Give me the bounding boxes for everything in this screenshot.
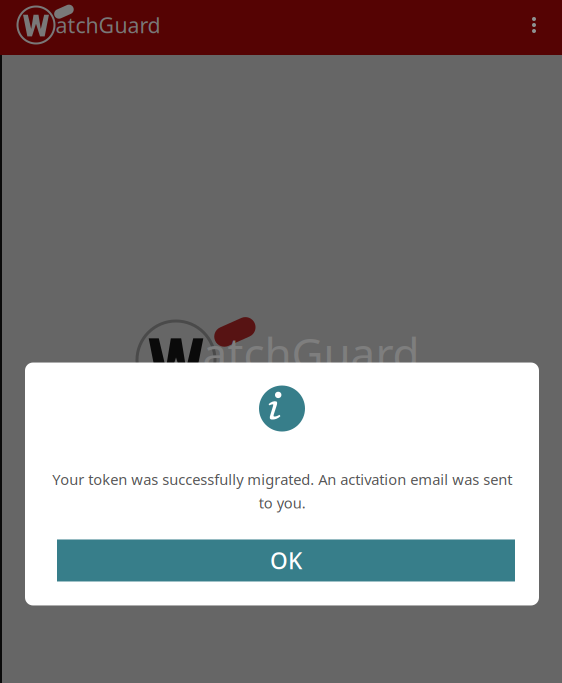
staticText: OK [270, 545, 302, 575]
staticText: Your token was successfully migrated. An… [52, 469, 512, 512]
staticText: atchGuard [202, 324, 419, 382]
staticText: atchGuard [55, 11, 160, 39]
button[interactable]: More options [510, 0, 558, 52]
button[interactable]: OK [57, 539, 515, 581]
